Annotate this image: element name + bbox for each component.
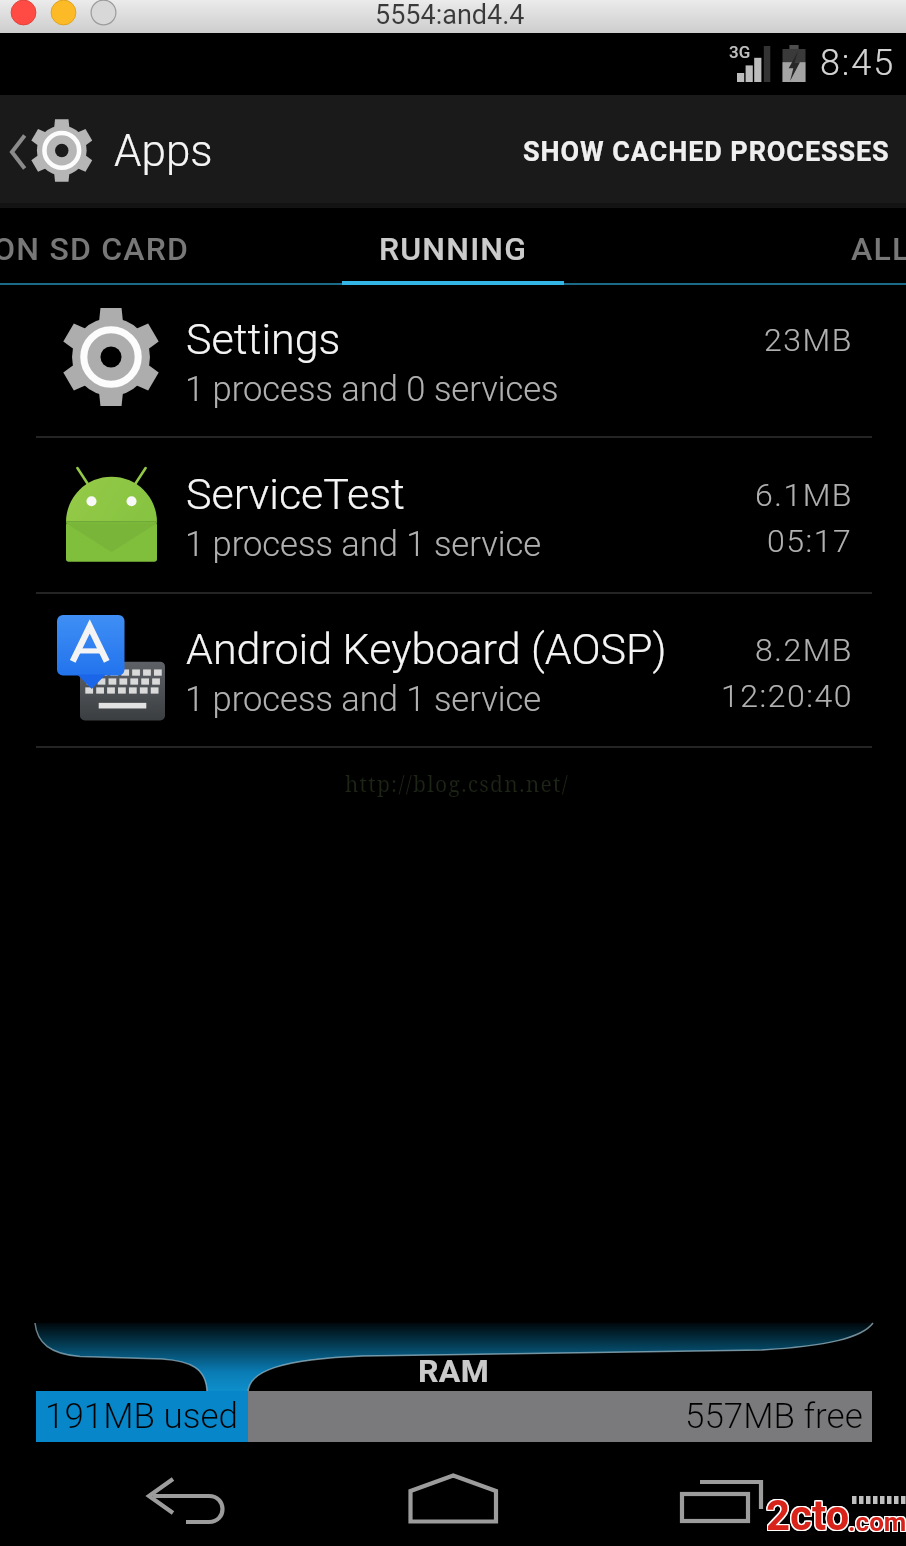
staticText: Settings [186,314,341,364]
staticText: SHOW CACHED PROCESSES [523,136,890,168]
staticText: 05:17 [767,522,853,560]
staticText: ON SD CARD [0,230,190,268]
staticText: ServiceTest [186,469,405,519]
staticText: 191MB used [45,1396,239,1437]
staticText: 8:45 [820,42,896,84]
staticText: .com [847,1507,906,1537]
button[interactable]: Android Keyboard (AOSP) [0,594,906,748]
staticText: 1 process and 1 service [185,524,542,564]
staticText: .com [849,1508,906,1538]
staticText: .com [847,1508,906,1538]
staticText: 2cto [766,1491,850,1540]
staticText: Apps [114,125,213,177]
staticText: 2cto [765,1491,849,1540]
button[interactable]: RUNNING [379,230,528,268]
staticText: 2cto [767,1491,851,1540]
staticText: RAM [418,1352,490,1390]
staticText: .com [849,1507,906,1537]
button[interactable]: Recent apps [647,1442,797,1546]
button[interactable]: ALL [851,230,906,268]
staticText: 1 process and 1 service [185,679,542,719]
staticText: 12:20:40 [721,677,853,715]
staticText: .com [848,1508,906,1538]
staticText: 2cto [767,1492,851,1541]
staticText: http://blog.csdn.net/ [4,770,906,799]
staticText: Android Keyboard (AOSP) [186,624,667,674]
button[interactable]: Settings [0,285,906,438]
staticText: .com [848,1507,906,1537]
button[interactable]: Navigate up, Apps [0,95,232,208]
staticText: 557MB free [685,1396,863,1437]
staticText: 2cto [765,1492,849,1541]
staticText: 6.1MB [755,476,853,514]
staticText: RUNNING [379,230,528,268]
staticText: 2cto [767,1490,851,1539]
staticText: 3G [729,42,751,62]
staticText: 2cto [765,1490,849,1539]
staticText: .com [848,1506,906,1536]
staticText: 1 process and 0 services [185,369,559,409]
staticText: 5554:and4.4 [375,0,525,31]
staticText: 2cto [766,1490,850,1539]
staticText: ALL [851,230,906,268]
button[interactable]: SHOW CACHED PROCESSES [507,95,906,208]
staticText: 2cto [766,1492,850,1541]
button[interactable]: Home [378,1442,528,1546]
button[interactable]: Back [110,1442,260,1546]
button[interactable]: ON SD CARD [0,230,190,268]
staticText: 23MB [764,321,853,359]
staticText: .com [849,1506,906,1536]
staticText: .com [847,1506,906,1536]
staticText: 8.2MB [755,631,853,669]
button[interactable]: ServiceTest [0,438,906,594]
